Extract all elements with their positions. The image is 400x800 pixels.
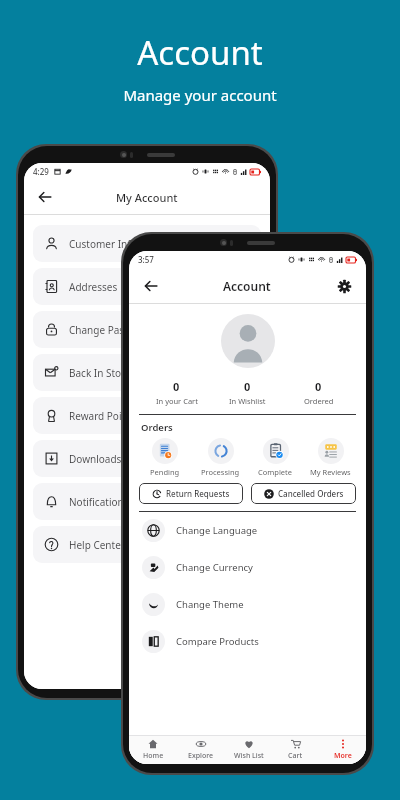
button[interactable]: Back In Stock — [33, 354, 261, 391]
staticText: Back In Stock — [69, 366, 132, 380]
button[interactable] — [221, 314, 275, 368]
staticText: Downloads — [69, 452, 122, 466]
button[interactable]: Reward Points — [33, 397, 261, 434]
staticText: Orders — [141, 421, 173, 434]
button[interactable]: Help Center — [33, 526, 261, 563]
staticText: Help Center — [69, 538, 125, 552]
staticText: Customer Info — [69, 237, 137, 251]
staticText: Return Requests — [166, 488, 230, 499]
staticText: Change Currency — [176, 561, 253, 574]
staticText: 3:57 — [138, 254, 154, 265]
staticText: 0 — [173, 379, 180, 394]
staticText: Home — [143, 751, 164, 761]
button[interactable]: Return Requests — [139, 483, 243, 504]
button[interactable]: Back — [35, 187, 55, 207]
staticText: Complete — [258, 467, 293, 477]
staticText: My Account — [116, 190, 178, 205]
staticText: Manage your account — [123, 85, 277, 105]
button[interactable]: Downloads — [33, 440, 261, 477]
button[interactable]: 0 — [283, 379, 354, 406]
button[interactable]: Change Language — [129, 512, 366, 549]
button[interactable]: My Reviews — [303, 438, 358, 477]
button[interactable]: Change Currency — [129, 549, 366, 586]
staticText: Reward Points — [69, 409, 137, 423]
staticText: In Wishlist — [229, 396, 266, 406]
staticText: My Reviews — [310, 467, 351, 477]
button[interactable]: 0 — [141, 379, 212, 406]
staticText: In your Cart — [156, 396, 198, 406]
staticText: Pending — [150, 467, 180, 477]
staticText: Compare Products — [176, 635, 259, 648]
staticText: More — [334, 751, 352, 761]
button[interactable]: Home — [129, 736, 177, 764]
staticText: Cancelled Orders — [278, 488, 344, 499]
staticText: Account — [223, 278, 271, 294]
staticText: Processing — [201, 467, 240, 477]
button[interactable]: 0 — [212, 379, 283, 406]
button[interactable]: Notifications — [33, 483, 261, 520]
staticText: 0 — [315, 379, 322, 394]
staticText: Account — [137, 30, 263, 75]
button[interactable]: Processing — [193, 438, 248, 477]
staticText: Notifications — [69, 495, 129, 509]
staticText: Change Password — [69, 323, 153, 337]
button[interactable]: Settings — [333, 275, 355, 297]
button[interactable]: Back — [140, 275, 162, 297]
staticText: Cart — [288, 751, 303, 761]
button[interactable]: Addresses — [33, 268, 261, 305]
staticText: Addresses — [69, 280, 118, 294]
staticText: 0 — [244, 379, 251, 394]
staticText: Wish List — [234, 751, 264, 761]
staticText: Change Theme — [176, 598, 244, 611]
staticText: Change Language — [176, 524, 258, 537]
button[interactable]: Customer Info — [33, 225, 261, 262]
button[interactable]: Change Theme — [129, 586, 366, 623]
staticText: 4:29 — [33, 166, 49, 177]
button[interactable]: Cancelled Orders — [251, 483, 356, 504]
button[interactable]: Wish List — [225, 736, 272, 764]
button[interactable]: Compare Products — [129, 623, 366, 660]
button[interactable]: Change Password — [33, 311, 261, 348]
button[interactable]: More — [319, 736, 366, 764]
button[interactable]: Complete — [248, 438, 303, 477]
staticText: Explore — [188, 751, 214, 761]
button[interactable]: Cart — [272, 736, 319, 764]
button[interactable]: Pending — [137, 438, 193, 477]
staticText: Ordered — [304, 396, 334, 406]
button[interactable]: Explore — [177, 736, 225, 764]
